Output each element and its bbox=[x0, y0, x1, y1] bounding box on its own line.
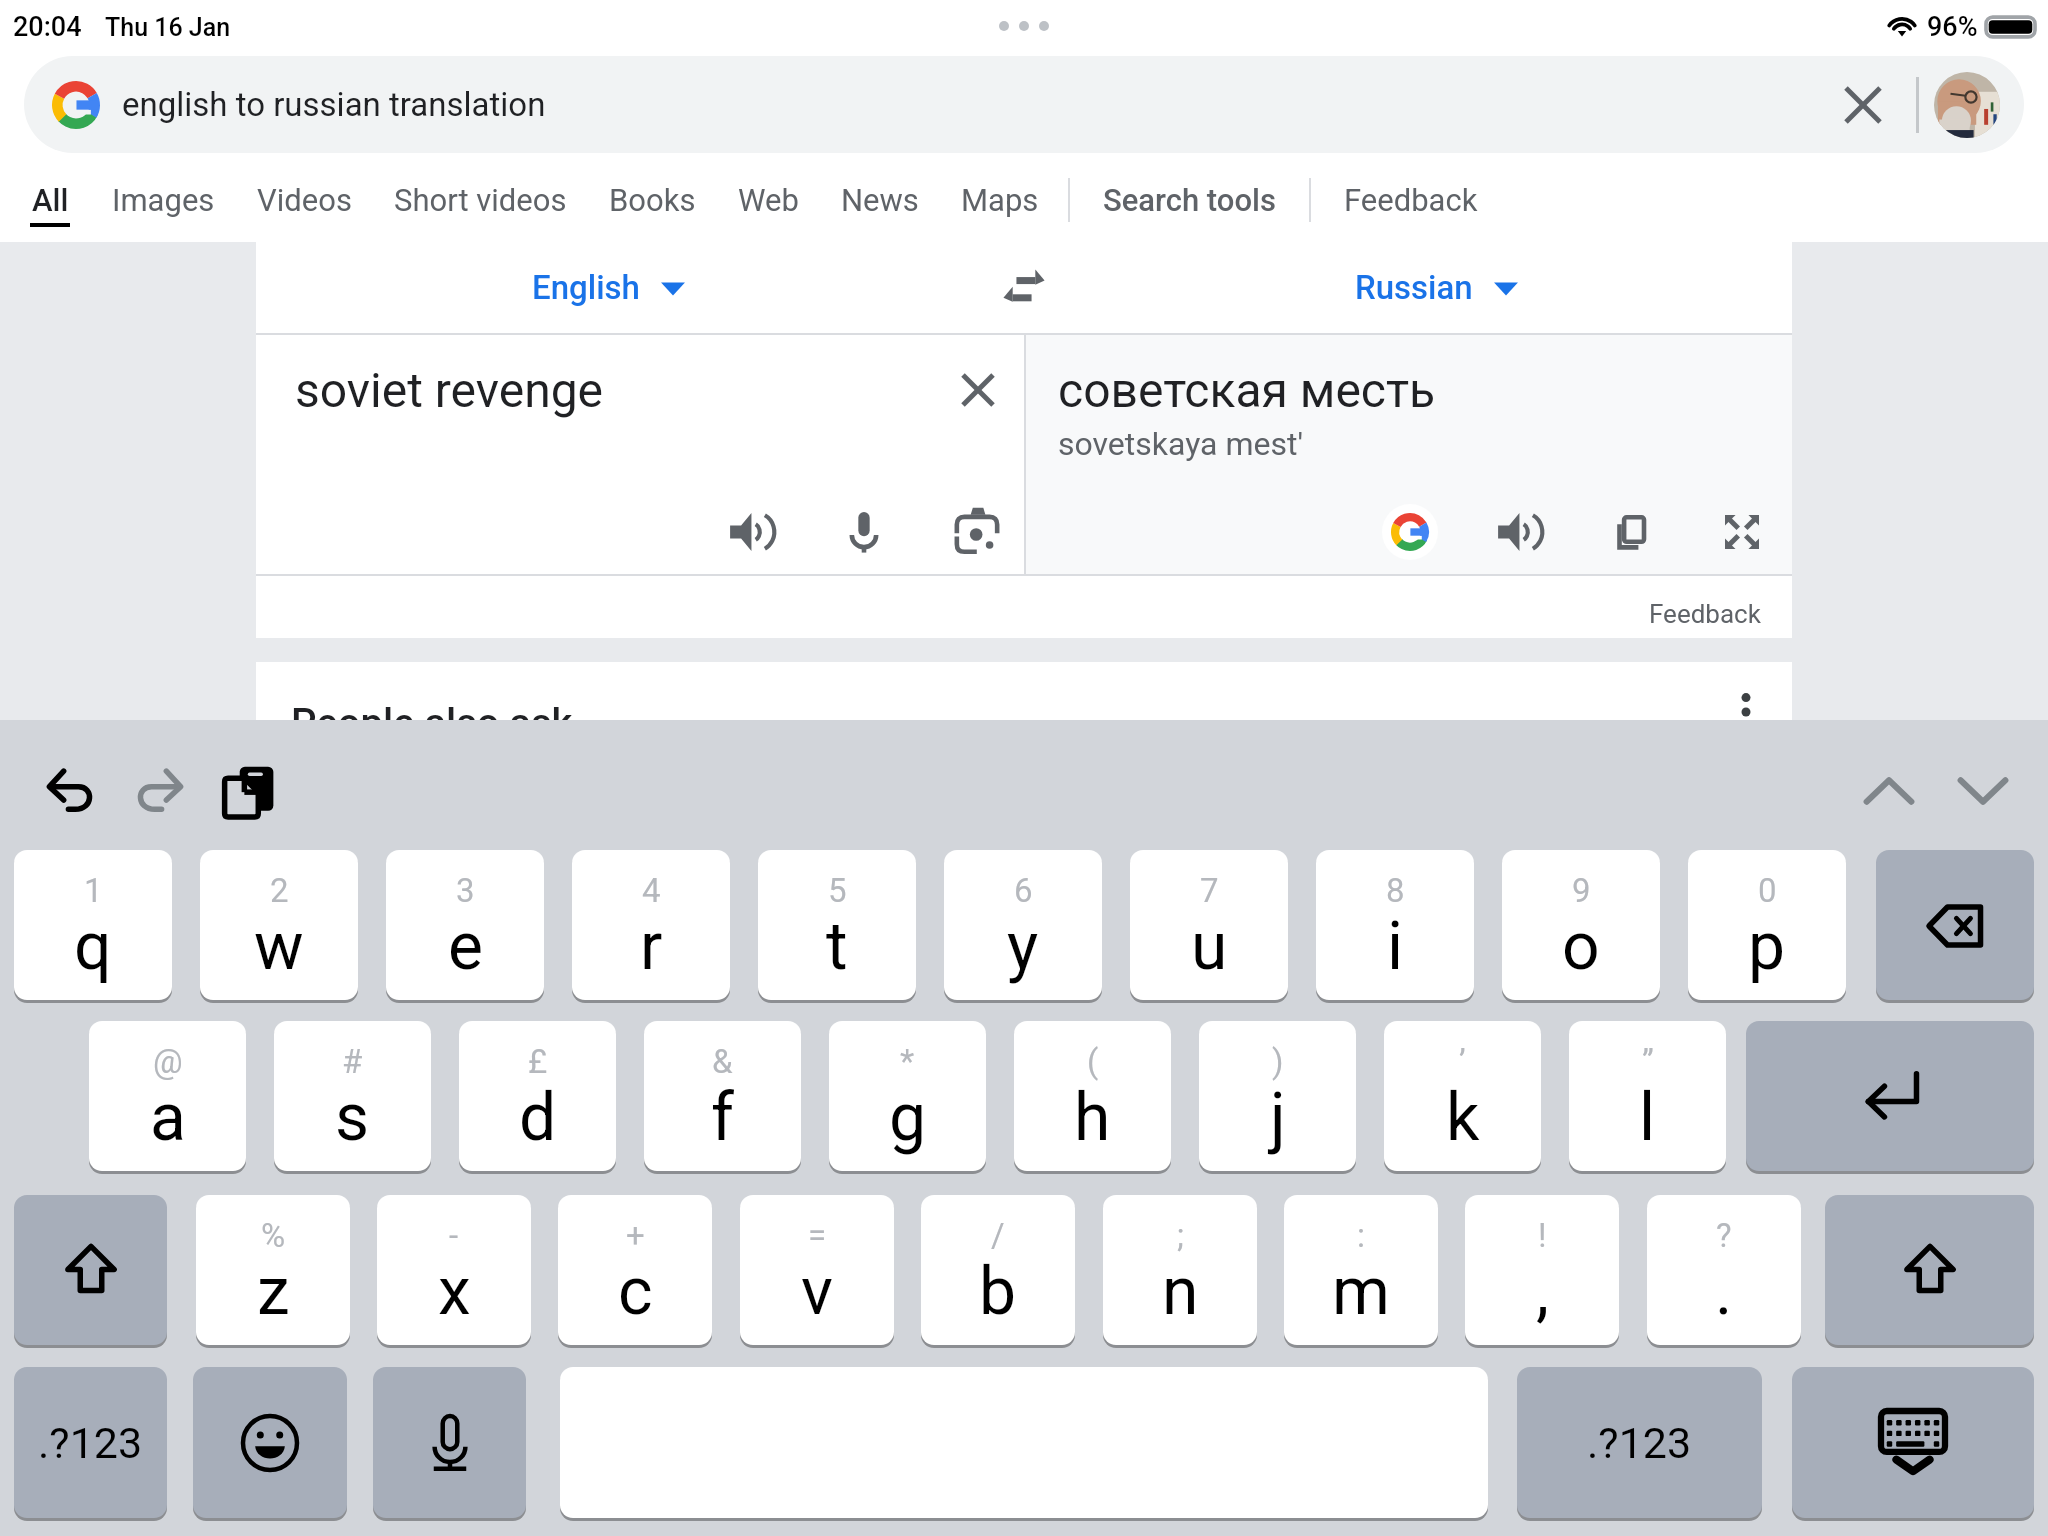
button[interactable]: Feedback bbox=[1649, 599, 1761, 629]
staticText: m bbox=[1332, 1253, 1390, 1330]
button[interactable]: Books bbox=[609, 157, 696, 242]
staticText: t bbox=[826, 908, 848, 985]
staticText: £ bbox=[528, 1042, 548, 1081]
staticText: 2 bbox=[270, 871, 289, 910]
button[interactable]: Redo bbox=[124, 756, 194, 826]
button[interactable]: Copy bbox=[1600, 502, 1660, 562]
button[interactable]: ! bbox=[1465, 1195, 1619, 1345]
button[interactable]: Emoji bbox=[193, 1367, 347, 1518]
button[interactable]: + bbox=[558, 1195, 712, 1345]
staticText: b bbox=[979, 1253, 1017, 1330]
button[interactable]: 1 bbox=[14, 850, 172, 1000]
button[interactable]: Next suggestion bbox=[1948, 756, 2018, 826]
button[interactable]: Clear bbox=[1832, 74, 1894, 136]
button[interactable]: / bbox=[921, 1195, 1075, 1345]
button[interactable]: 5 bbox=[758, 850, 916, 1000]
button[interactable]: ) bbox=[1199, 1021, 1356, 1171]
button[interactable]: ” bbox=[1569, 1021, 1726, 1171]
staticText: r bbox=[640, 908, 663, 985]
button[interactable]: Russian bbox=[1282, 242, 1592, 333]
button[interactable]: 3 bbox=[386, 850, 544, 1000]
button[interactable]: English bbox=[454, 242, 764, 333]
button[interactable]: Listen bbox=[721, 502, 781, 562]
button[interactable]: News bbox=[841, 157, 919, 242]
button[interactable]: Clear text bbox=[950, 362, 1006, 418]
staticText: y bbox=[1007, 908, 1039, 985]
button[interactable]: Expand bbox=[1712, 502, 1772, 562]
staticText: English bbox=[532, 268, 640, 307]
staticText: w bbox=[254, 908, 304, 985]
button[interactable]: 6 bbox=[944, 850, 1102, 1000]
button[interactable]: * bbox=[829, 1021, 986, 1171]
button[interactable]: Web bbox=[738, 157, 799, 242]
button[interactable]: Shift bbox=[14, 1195, 167, 1345]
button[interactable]: Images bbox=[112, 157, 215, 242]
button[interactable]: Previous suggestion bbox=[1854, 756, 1924, 826]
staticText: e bbox=[448, 908, 483, 985]
staticText: i bbox=[1387, 908, 1404, 985]
button[interactable]: Clipboard bbox=[214, 756, 284, 826]
staticText: s bbox=[335, 1079, 370, 1156]
button[interactable]: Short videos bbox=[394, 157, 567, 242]
button[interactable]: Voice input bbox=[834, 502, 894, 562]
button[interactable]: Enter bbox=[1746, 1021, 2034, 1171]
button[interactable]: .?123 bbox=[14, 1367, 167, 1518]
staticText: ; bbox=[1177, 1216, 1184, 1255]
button[interactable]: All bbox=[30, 157, 70, 242]
button[interactable]: More options bbox=[1726, 692, 1766, 732]
button[interactable]: 0 bbox=[1688, 850, 1846, 1000]
button[interactable]: 7 bbox=[1130, 850, 1288, 1000]
button[interactable]: Backspace bbox=[1876, 850, 2034, 1000]
button[interactable]: Shift bbox=[1825, 1195, 2034, 1345]
staticText: Books bbox=[609, 182, 696, 218]
button[interactable]: Feedback bbox=[1344, 157, 1478, 242]
button[interactable]: .?123 bbox=[1517, 1367, 1762, 1518]
button[interactable]: Search tools bbox=[1103, 157, 1276, 242]
button[interactable]: ; bbox=[1103, 1195, 1257, 1345]
button[interactable]: % bbox=[196, 1195, 350, 1345]
staticText: 6 bbox=[1014, 871, 1033, 910]
staticText: = bbox=[808, 1216, 827, 1255]
button[interactable]: - bbox=[377, 1195, 531, 1345]
staticText: - bbox=[449, 1216, 459, 1255]
button[interactable]: Swap languages bbox=[964, 242, 1084, 333]
staticText: # bbox=[342, 1042, 363, 1081]
button[interactable]: Account bbox=[1934, 72, 2000, 138]
staticText: sovetskaya mest' bbox=[1058, 425, 1304, 463]
staticText: / bbox=[991, 1216, 1005, 1255]
button[interactable]: Google Lens bbox=[947, 502, 1007, 562]
button[interactable]: Open in Google Translate bbox=[1381, 503, 1439, 561]
button[interactable]: & bbox=[644, 1021, 801, 1171]
button[interactable]: 9 bbox=[1502, 850, 1660, 1000]
button[interactable]: : bbox=[1284, 1195, 1438, 1345]
staticText: 5 bbox=[828, 871, 847, 910]
button[interactable]: Videos bbox=[257, 157, 352, 242]
staticText: People also ask bbox=[291, 700, 573, 747]
button[interactable]: Undo bbox=[36, 756, 106, 826]
button[interactable]: £ bbox=[459, 1021, 616, 1171]
button[interactable]: ? bbox=[1647, 1195, 1801, 1345]
button[interactable]: Listen bbox=[1489, 502, 1549, 562]
button[interactable]: ( bbox=[1014, 1021, 1171, 1171]
button[interactable]: 4 bbox=[572, 850, 730, 1000]
button[interactable]: = bbox=[740, 1195, 894, 1345]
button[interactable]: Maps bbox=[961, 157, 1039, 242]
staticText: Maps bbox=[961, 182, 1039, 218]
staticText: Web bbox=[738, 182, 799, 218]
staticText: советская месть bbox=[1058, 362, 1436, 418]
staticText: 9 bbox=[1572, 871, 1591, 910]
button[interactable]: english to russian translation bbox=[24, 56, 2024, 153]
staticText: .?123 bbox=[1587, 1418, 1692, 1468]
button[interactable]: Hide keyboard bbox=[1792, 1367, 2034, 1518]
button[interactable]: @ bbox=[89, 1021, 246, 1171]
button[interactable]: 8 bbox=[1316, 850, 1474, 1000]
button[interactable]: Voice input bbox=[373, 1367, 526, 1518]
button[interactable]: 2 bbox=[200, 850, 358, 1000]
button[interactable]: ’ bbox=[1384, 1021, 1541, 1171]
staticText: Thu 16 Jan bbox=[105, 13, 231, 42]
staticText: q bbox=[74, 908, 112, 985]
staticText: .?123 bbox=[38, 1418, 143, 1468]
button[interactable]: # bbox=[274, 1021, 431, 1171]
staticText: News bbox=[841, 182, 919, 218]
